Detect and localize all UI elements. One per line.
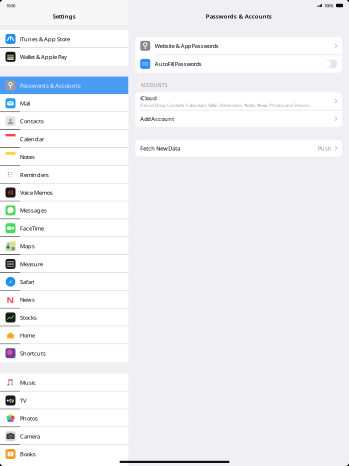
staticText: Camera <box>20 432 40 440</box>
staticText: 100% <box>324 3 334 8</box>
button[interactable]: Fetch New Data <box>135 140 342 157</box>
button[interactable]: Home <box>0 326 128 344</box>
staticText: Mail <box>20 99 30 107</box>
staticText: Settings <box>53 12 76 20</box>
staticText: Messages <box>20 206 47 214</box>
staticText: 10:00 <box>6 3 15 8</box>
staticText: ACCOUNTS <box>141 82 168 88</box>
staticText: iCloud Drive, Contacts, Calendars, Safar… <box>140 102 311 108</box>
staticText: TV <box>20 397 26 404</box>
staticText: Measure <box>20 260 43 268</box>
button[interactable]: Books <box>0 445 128 463</box>
staticText: Maps <box>20 242 35 250</box>
button[interactable]: Calendar <box>0 130 128 148</box>
staticText: Voice Memos <box>20 189 53 196</box>
staticText: AutoFill Passwords <box>155 60 202 68</box>
button[interactable]: Voice Memos <box>0 184 128 201</box>
staticText: Wallet & Apple Pay <box>20 53 67 61</box>
button[interactable]: Shortcuts <box>0 344 128 362</box>
staticText: Stocks <box>20 314 37 321</box>
button[interactable]: Mail <box>0 94 128 112</box>
staticText: Contacts <box>20 117 44 125</box>
staticText: Calendar <box>20 135 44 143</box>
button[interactable]: Camera <box>0 427 128 445</box>
staticText: Notes <box>20 153 35 161</box>
staticText: iCloud <box>140 94 156 102</box>
staticText: Passwords & Accounts <box>20 81 81 89</box>
staticText: FaceTime <box>20 224 44 232</box>
button[interactable]: AutoFill Passwords <box>135 55 342 73</box>
staticText: Safari <box>20 278 34 286</box>
button[interactable]: tv <box>0 392 128 409</box>
button[interactable]: Music <box>0 374 128 392</box>
staticText: Add Account <box>140 115 174 122</box>
button[interactable]: Add Account <box>135 110 342 127</box>
button[interactable]: Wallet & Apple Pay <box>0 48 128 66</box>
button[interactable]: Passwords & Accounts <box>0 76 128 94</box>
staticText: Passwords & Accounts <box>206 12 272 20</box>
button[interactable]: Maps <box>0 237 128 255</box>
staticText: Home <box>20 331 35 339</box>
button[interactable]: iTunes & App Store <box>0 30 128 48</box>
button[interactable]: FaceTime <box>0 219 128 237</box>
staticText: Music <box>20 379 36 386</box>
staticText: Reminders <box>20 171 49 179</box>
button[interactable]: Website & App Passwords <box>135 37 342 55</box>
staticText: Photos <box>20 414 38 422</box>
button[interactable]: Stocks <box>0 309 128 326</box>
button[interactable]: Messages <box>0 201 128 219</box>
staticText: Books <box>20 450 36 458</box>
staticText: iTunes & App Store <box>20 35 70 43</box>
staticText: News <box>20 296 35 303</box>
staticText: Fetch New Data <box>140 144 180 152</box>
button[interactable]: Measure <box>0 255 128 273</box>
button[interactable]: Contacts <box>0 112 128 130</box>
staticText: Website & App Passwords <box>155 42 219 50</box>
button[interactable]: iCloud <box>135 92 342 110</box>
button[interactable]: Reminders <box>0 166 128 184</box>
button[interactable]: Notes <box>0 148 128 166</box>
button[interactable]: Photos <box>0 409 128 427</box>
staticText: Shortcuts <box>20 349 46 357</box>
button[interactable]: Safari <box>0 273 128 291</box>
staticText: N <box>6 293 14 306</box>
staticText: tv <box>9 397 14 404</box>
button[interactable]: N <box>0 291 128 309</box>
staticText: Push <box>318 144 332 152</box>
